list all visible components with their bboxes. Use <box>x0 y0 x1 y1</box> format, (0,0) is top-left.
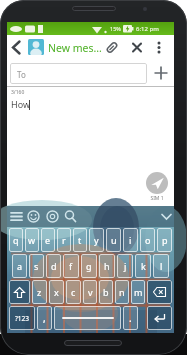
button[interactable] <box>9 209 24 224</box>
button[interactable]: a <box>12 254 27 278</box>
staticText: , <box>43 311 46 325</box>
button[interactable] <box>104 39 120 56</box>
button[interactable]: ?123 <box>9 306 35 330</box>
staticText: 15% <box>110 25 121 32</box>
staticText: k <box>141 260 146 272</box>
staticText: 3/160 <box>11 89 25 96</box>
button[interactable]: g <box>81 254 97 278</box>
button[interactable]: r <box>57 228 71 252</box>
staticText: b <box>103 286 109 298</box>
staticText: How <box>11 98 31 110</box>
staticText: p <box>162 234 168 246</box>
staticText: To <box>17 69 26 80</box>
button[interactable]: j <box>117 254 133 278</box>
button[interactable]: , <box>37 306 52 330</box>
button[interactable]: v <box>83 280 97 304</box>
staticText: t <box>78 234 82 246</box>
button[interactable]: s <box>29 254 44 278</box>
staticText: o <box>145 234 151 246</box>
button[interactable] <box>147 280 172 304</box>
button[interactable]: w <box>25 228 39 252</box>
button[interactable]: To <box>10 63 147 84</box>
button[interactable]: f <box>63 254 79 278</box>
button[interactable]: q <box>9 228 23 252</box>
staticText: v <box>88 286 93 298</box>
button[interactable] <box>9 280 30 304</box>
button[interactable]: d <box>46 254 61 278</box>
staticText: q <box>13 234 19 246</box>
button[interactable] <box>63 209 78 224</box>
button[interactable] <box>45 209 60 224</box>
staticText: r <box>62 234 66 246</box>
button[interactable] <box>54 306 121 330</box>
staticText: New mes... <box>48 41 102 55</box>
button[interactable]: z <box>32 280 47 304</box>
button[interactable]: l <box>153 254 169 278</box>
button[interactable] <box>26 209 41 224</box>
staticText: l <box>160 260 163 272</box>
button[interactable] <box>129 39 145 56</box>
button[interactable] <box>159 209 174 224</box>
button[interactable] <box>152 39 166 56</box>
staticText: i <box>129 234 132 246</box>
button[interactable] <box>146 172 168 194</box>
staticText: a <box>17 260 23 272</box>
button[interactable]: b <box>99 280 113 304</box>
staticText: j <box>124 260 127 272</box>
staticText: SIM 1 <box>145 195 169 202</box>
staticText: y <box>94 234 99 246</box>
staticText: u <box>111 234 117 246</box>
staticText: d <box>51 260 57 272</box>
button[interactable]: p <box>157 228 172 252</box>
button[interactable]: e <box>41 228 55 252</box>
staticText: f <box>69 260 73 272</box>
button[interactable]: o <box>140 228 155 252</box>
staticText: w <box>28 234 36 246</box>
staticText: x <box>54 286 59 298</box>
staticText: c <box>71 286 76 298</box>
staticText: e <box>45 234 51 246</box>
staticText: s <box>34 260 39 272</box>
staticText: ?123 <box>15 314 29 323</box>
button[interactable]: u <box>106 228 121 252</box>
button[interactable]: x <box>49 280 64 304</box>
button[interactable] <box>9 39 25 56</box>
button[interactable]: k <box>135 254 151 278</box>
button[interactable]: t <box>73 228 87 252</box>
button[interactable]: n <box>115 280 129 304</box>
button[interactable] <box>147 306 172 330</box>
button[interactable]: . <box>123 306 138 330</box>
staticText: n <box>119 286 125 298</box>
button[interactable] <box>153 65 169 81</box>
button[interactable]: m <box>131 280 145 304</box>
staticText: h <box>104 260 110 272</box>
button[interactable] <box>28 39 44 55</box>
button[interactable]: h <box>99 254 115 278</box>
staticText: . <box>129 311 132 325</box>
button[interactable]: i <box>123 228 138 252</box>
button[interactable]: c <box>66 280 81 304</box>
staticText: z <box>37 286 42 298</box>
button[interactable]: y <box>89 228 104 252</box>
staticText: m <box>134 286 143 298</box>
staticText: g <box>86 260 92 272</box>
staticText: 6:12 pm <box>136 25 159 33</box>
